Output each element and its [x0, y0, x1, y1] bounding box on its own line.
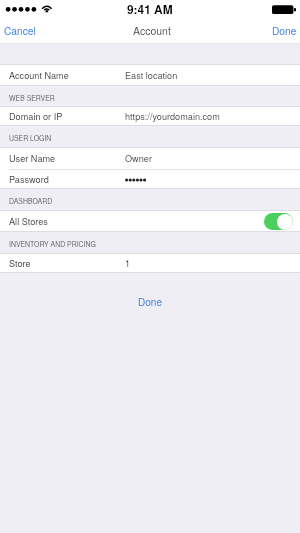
staticText: Password [9, 172, 125, 185]
staticText: 9:41 AM [127, 1, 173, 18]
staticText: 1 [125, 256, 131, 269]
staticText: DASHBOARD [9, 196, 53, 206]
staticText: INVENTORY AND PRICING [9, 239, 96, 249]
button[interactable]: Done [268, 18, 300, 43]
staticText: Account [133, 23, 171, 38]
staticText: USER LOGIN [9, 133, 52, 143]
staticText: Store [9, 256, 125, 269]
staticText: Domain or IP [9, 109, 125, 122]
button[interactable]: Domain or IP [0, 106, 300, 126]
button[interactable]: All Stores on [264, 213, 293, 230]
staticText: East location [125, 68, 178, 81]
button[interactable]: Cancel [0, 18, 40, 43]
staticText: All Stores [9, 214, 48, 227]
button[interactable]: Store [0, 253, 300, 273]
staticText: Owner [125, 151, 152, 164]
staticText: https://yourdomain.com [125, 109, 220, 122]
button[interactable]: All Stores [0, 210, 300, 232]
staticText: WEB SERVER [9, 93, 55, 103]
button[interactable]: Account Name [0, 64, 300, 86]
button[interactable]: User Name [0, 147, 300, 169]
button[interactable]: Password [0, 170, 300, 189]
button[interactable]: Done [126, 292, 174, 312]
staticText: Account Name [9, 68, 125, 81]
staticText: User Name [9, 151, 125, 164]
